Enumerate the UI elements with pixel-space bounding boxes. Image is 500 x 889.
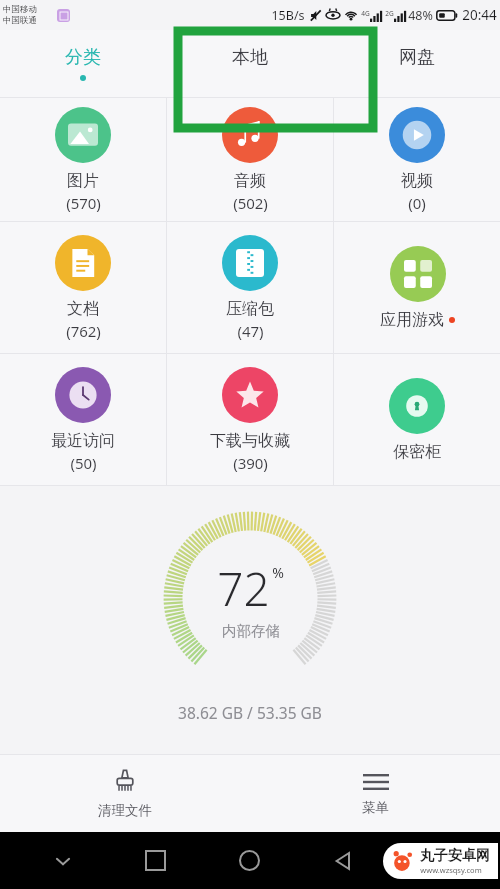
staticText: (762): [66, 321, 101, 341]
button[interactable]: Recents: [109, 832, 202, 889]
staticText: 72: [217, 557, 270, 620]
button[interactable]: 图片: [0, 98, 166, 221]
staticText: (502): [233, 193, 268, 213]
staticText: 中国联通: [3, 15, 37, 26]
staticText: 48%: [408, 7, 433, 24]
staticText: 音频: [234, 171, 266, 191]
button[interactable]: 下载与收藏: [167, 354, 333, 485]
button[interactable]: 音频: [167, 98, 333, 221]
staticText: 20:44: [462, 6, 497, 24]
button[interactable]: Home: [202, 832, 296, 889]
staticText: 38.62 GB / 53.35 GB: [178, 702, 322, 723]
button[interactable]: Back: [296, 832, 390, 889]
button[interactable]: 文档: [0, 222, 166, 353]
staticText: 视频: [401, 171, 433, 191]
staticText: (50): [70, 453, 97, 473]
staticText: 分类: [65, 46, 101, 69]
staticText: 2G: [385, 9, 394, 18]
staticText: 内部存储: [222, 622, 280, 640]
button[interactable]: 视频: [334, 98, 500, 221]
staticText: 丸子安卓网: [420, 847, 490, 865]
button[interactable]: 本地: [166, 30, 333, 97]
button[interactable]: 清理文件: [0, 755, 250, 832]
staticText: 网盘: [399, 46, 435, 69]
staticText: 4G: [361, 9, 370, 18]
button[interactable]: 菜单: [250, 755, 500, 832]
staticText: 下载与收藏: [210, 431, 290, 451]
staticText: 最近访问: [51, 431, 115, 451]
staticText: 清理文件: [98, 802, 152, 819]
staticText: 应用游戏: [380, 310, 444, 330]
staticText: (0): [408, 193, 426, 213]
staticText: 压缩包: [226, 299, 274, 319]
staticText: 保密柜: [393, 442, 441, 462]
staticText: %: [272, 563, 284, 582]
staticText: 15B/s: [271, 7, 305, 24]
staticText: 中国移动: [3, 4, 37, 15]
staticText: (570): [66, 193, 101, 213]
button[interactable]: 保密柜: [334, 354, 500, 485]
staticText: (390): [233, 453, 268, 473]
staticText: www.wzsqsy.com: [420, 865, 482, 875]
button[interactable]: 压缩包: [167, 222, 333, 353]
staticText: 图片: [67, 171, 99, 191]
button[interactable]: 分类: [0, 30, 166, 97]
staticText: 文档: [67, 299, 99, 319]
staticText: (47): [237, 321, 264, 341]
button[interactable]: 应用游戏: [334, 222, 500, 353]
button[interactable]: 网盘: [333, 30, 500, 97]
button[interactable]: 最近访问: [0, 354, 166, 485]
staticText: 菜单: [362, 799, 389, 816]
button[interactable]: Hide: [16, 832, 109, 889]
staticText: 本地: [232, 46, 268, 69]
